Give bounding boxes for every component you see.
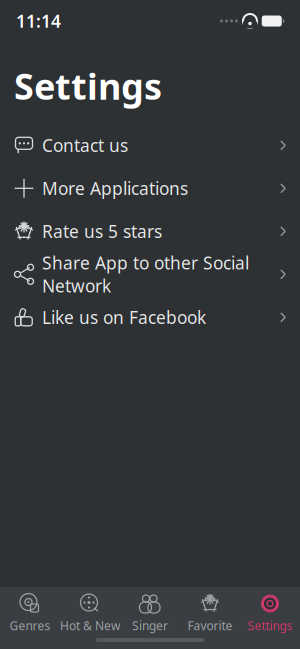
staticText: Genres [9, 617, 50, 633]
button[interactable]: Contact us [0, 124, 300, 167]
button[interactable]: Like us on Facebook [0, 296, 300, 339]
staticText: Settings [14, 62, 162, 110]
staticText: Singer [132, 617, 168, 633]
button[interactable]: Share App to other Social Network [0, 253, 300, 296]
staticText: More Applications [42, 177, 188, 200]
button[interactable]: Hot & New [60, 590, 120, 636]
staticText: Favorite [187, 617, 232, 633]
button[interactable]: More Applications [0, 167, 300, 210]
button[interactable]: Favorite [180, 590, 240, 636]
button[interactable]: Singer [120, 590, 180, 636]
button[interactable]: Rate us 5 stars [0, 210, 300, 253]
staticText: Contact us [42, 134, 128, 157]
button[interactable]: Settings [240, 590, 300, 636]
staticText: 11:14 [16, 9, 61, 32]
button[interactable]: Genres [0, 590, 60, 636]
staticText: Settings [247, 617, 292, 633]
staticText: Rate us 5 stars [42, 220, 162, 243]
staticText: Like us on Facebook [42, 306, 206, 329]
staticText: Share App to other Social Network [42, 251, 249, 297]
staticText: Hot & New [60, 617, 120, 633]
